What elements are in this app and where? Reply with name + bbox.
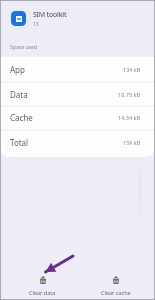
staticText: Clear data — [29, 289, 56, 296]
button[interactable]: App — [0, 57, 155, 82]
staticText: Space used — [10, 43, 38, 50]
staticText: 10.75 kB — [118, 91, 141, 98]
staticText: 14.34 kB — [118, 114, 141, 121]
staticText: Data — [10, 89, 28, 100]
staticText: 13 — [33, 21, 39, 28]
staticText: Total — [10, 137, 29, 148]
staticText: Clear cache — [101, 289, 131, 296]
staticText: Cache — [10, 112, 33, 123]
button[interactable]: Cache — [0, 105, 155, 129]
button[interactable]: Data — [0, 82, 155, 106]
button[interactable]: Clear data — [22, 273, 63, 299]
button[interactable]: Total — [0, 129, 155, 156]
staticText: 134 kB — [123, 66, 141, 73]
button[interactable]: SIM toolkit — [0, 0, 155, 36]
staticText: 159 kB — [123, 139, 141, 146]
button[interactable]: Clear cache — [95, 273, 136, 299]
staticText: SIM toolkit — [33, 10, 67, 20]
staticText: App — [10, 64, 25, 75]
